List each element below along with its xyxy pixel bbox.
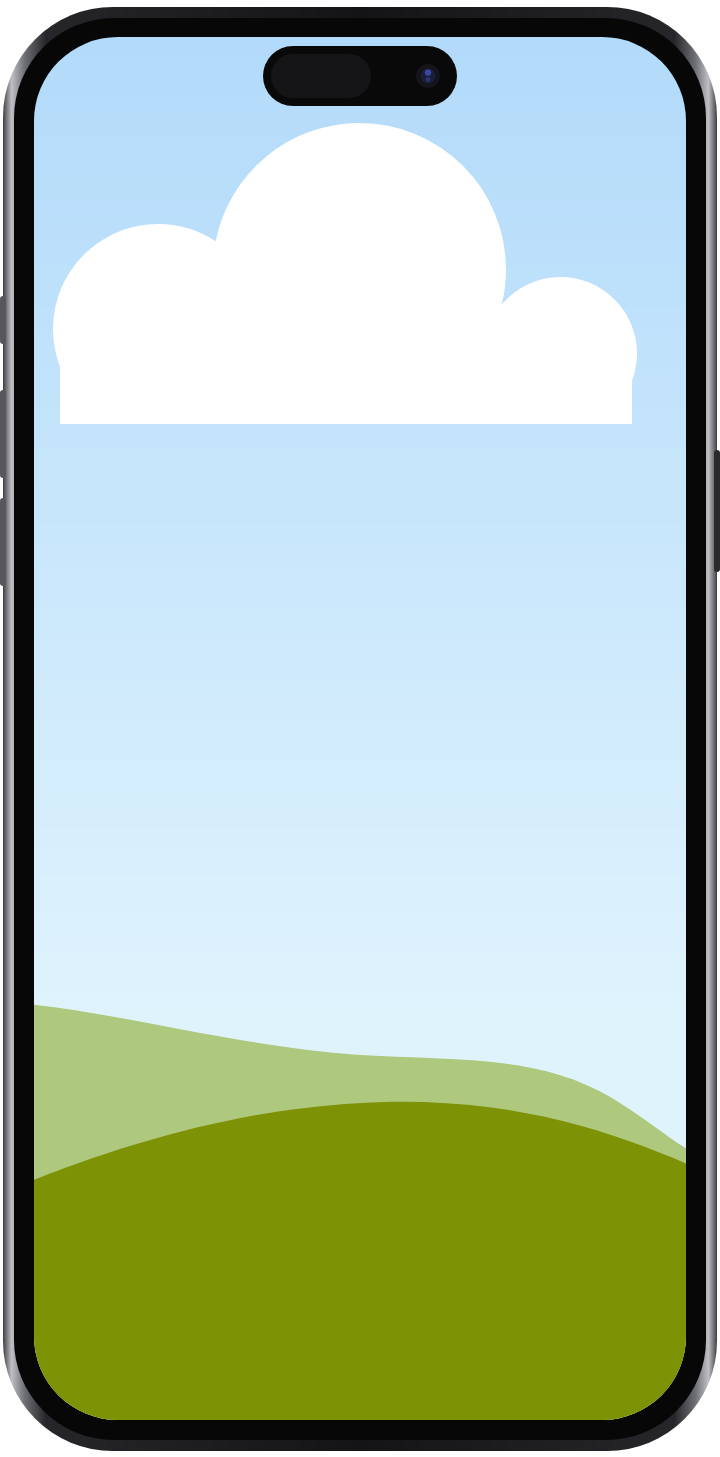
button[interactable]: Phone mockup showing rolling hills wallp… — [0, 0, 720, 1457]
